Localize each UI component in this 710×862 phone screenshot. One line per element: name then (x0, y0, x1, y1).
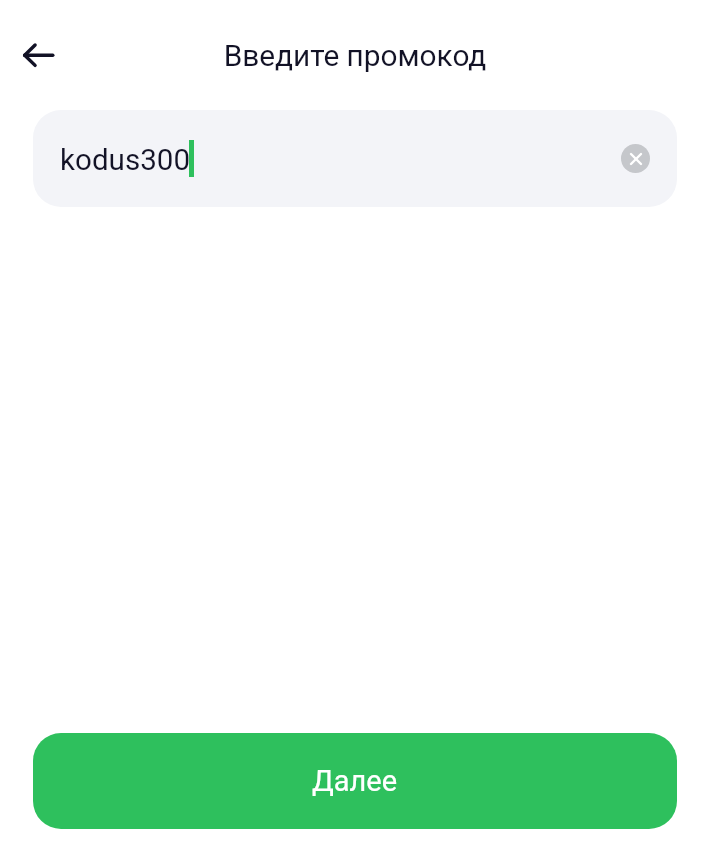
staticText: Далее (312, 764, 398, 798)
button[interactable]: Back (5, 33, 49, 77)
button[interactable]: Clear text (621, 144, 650, 173)
staticText: Введите промокод (0, 38, 710, 73)
button[interactable]: Promo code input (33, 110, 677, 207)
staticText: kodus300 (60, 143, 191, 178)
button[interactable]: Далее (33, 733, 677, 829)
